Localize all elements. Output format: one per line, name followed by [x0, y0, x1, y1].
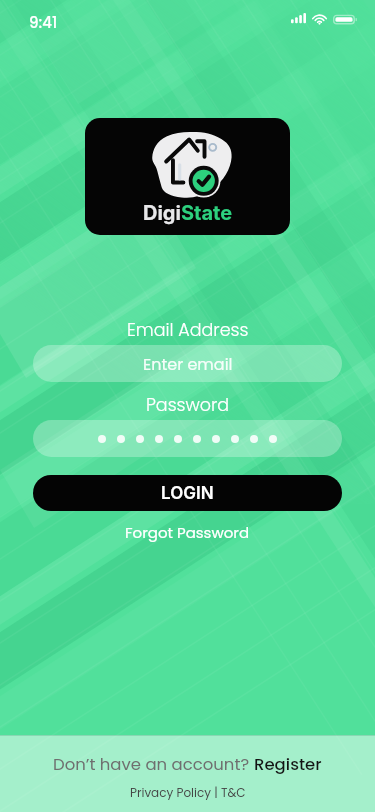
staticText: Don’t have an account? — [53, 753, 254, 776]
button[interactable]: Forgot Password — [125, 522, 250, 543]
button[interactable] — [33, 420, 342, 457]
button[interactable]: Enter email — [33, 345, 342, 382]
staticText: Forgot Password — [125, 522, 250, 543]
button[interactable]: Privacy Policy | T&C — [130, 784, 246, 801]
button[interactable]: LOGIN — [33, 475, 342, 511]
staticText: LOGIN — [161, 483, 214, 504]
staticText: 9:41 — [29, 12, 58, 33]
staticText: Privacy Policy | T&C — [130, 784, 246, 801]
staticText: DigiState — [143, 201, 233, 225]
staticText: Password — [146, 393, 230, 418]
staticText: Enter email — [143, 353, 233, 375]
button[interactable]: DigiState logo — [85, 118, 290, 235]
staticText: Register — [254, 753, 322, 776]
staticText: Email Address — [127, 318, 249, 343]
button[interactable]: Register — [254, 753, 322, 776]
